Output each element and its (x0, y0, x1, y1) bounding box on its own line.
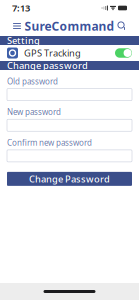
staticText: 7:13 (12, 2, 30, 14)
staticText: New password (7, 107, 61, 117)
button[interactable]: GPS Tracking (0, 45, 139, 61)
button[interactable]: Change Password (7, 172, 132, 186)
staticText: Setting (7, 34, 40, 47)
staticText: GPS Tracking (24, 47, 81, 59)
staticText: Old password (7, 76, 58, 87)
button[interactable]: Search (111, 16, 133, 36)
staticText: Change Password (29, 173, 110, 185)
button[interactable]: Menu (6, 16, 28, 36)
staticText: Confirm new password (7, 137, 92, 148)
staticText: SureCommand (24, 18, 114, 34)
staticText: Change password (7, 59, 88, 72)
